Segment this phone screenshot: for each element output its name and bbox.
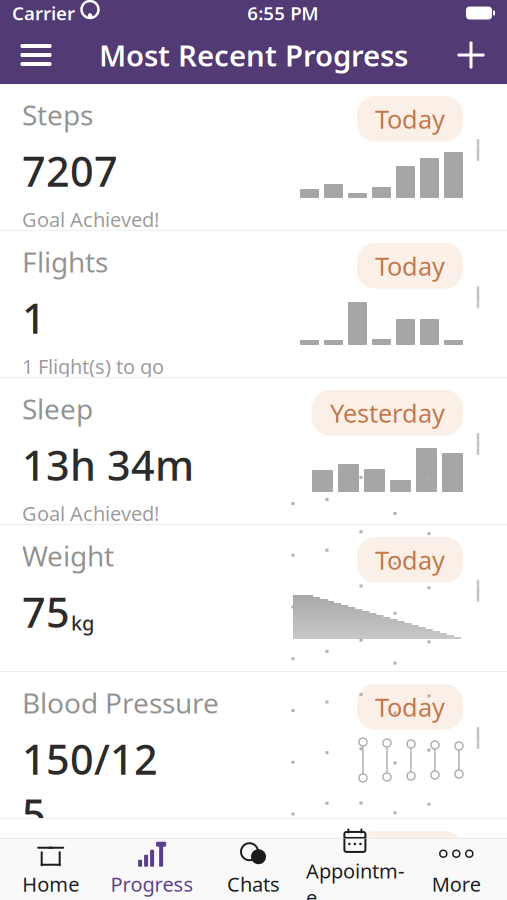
staticText: 7207 (22, 143, 118, 198)
staticText: Today (375, 690, 445, 724)
staticText: Blood Pressure (22, 684, 219, 721)
button[interactable]: Weight (0, 525, 507, 672)
staticText: 1 Flight(s) to go (22, 353, 164, 380)
staticText: Weight (22, 537, 114, 574)
button[interactable]: Blood Pressure (0, 672, 507, 819)
staticText: Today (375, 102, 445, 136)
staticText: Today (375, 837, 445, 871)
staticText: 150/125 (22, 731, 158, 841)
staticText: Goal Achieved! (22, 500, 159, 527)
button[interactable]: Flights (0, 231, 507, 378)
button[interactable]: Progress (101, 838, 203, 900)
staticText: 6:55 PM (247, 1, 318, 25)
button[interactable]: Sleep (0, 378, 507, 525)
staticText: Carrier (12, 1, 75, 25)
staticText: Chats (227, 871, 280, 897)
button[interactable]: More (406, 838, 507, 900)
staticText: Most Recent Progress (99, 35, 408, 74)
staticText: mm Hg (159, 811, 229, 838)
staticText: Progress (111, 871, 194, 897)
button[interactable]: Steps (0, 84, 507, 231)
staticText: Flights (22, 243, 108, 280)
button[interactable]: Chats (203, 838, 304, 900)
staticText: Today (375, 543, 445, 577)
staticText: 13h 34m (22, 437, 194, 492)
staticText: Home (22, 871, 79, 897)
staticText: Yesterday (330, 396, 445, 430)
staticText: More (432, 871, 481, 897)
staticText: 1 (22, 290, 46, 345)
button[interactable]: Appointme… (304, 838, 406, 900)
button[interactable]: Blood Sugar (0, 819, 507, 900)
staticText: 75 (22, 584, 70, 639)
staticText: 54 (22, 878, 70, 900)
button[interactable]: Add (445, 30, 497, 80)
staticText: Sleep (22, 390, 93, 427)
button[interactable]: Menu (10, 30, 62, 80)
button[interactable]: Home (0, 838, 101, 900)
staticText: Today (375, 249, 445, 283)
staticText: Appointme… (306, 857, 404, 900)
staticText: Steps (22, 96, 93, 133)
staticText: Goal Achieved! (22, 206, 159, 233)
staticText: kg (71, 609, 94, 636)
staticText: Blood Sugar (22, 831, 182, 868)
